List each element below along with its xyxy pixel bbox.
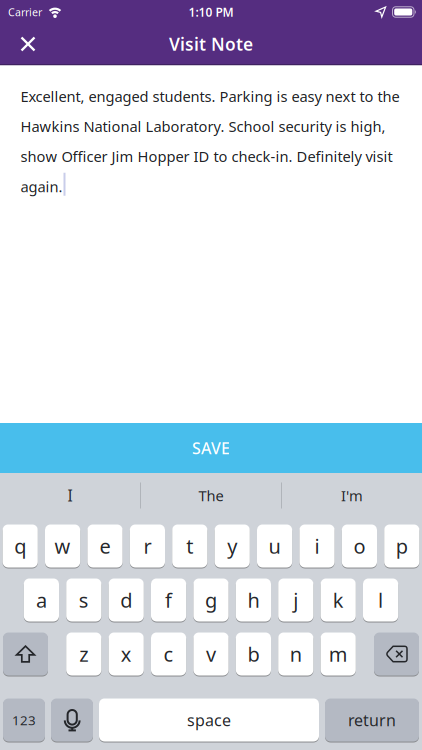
staticText: h: [247, 587, 259, 613]
staticText: r: [143, 533, 151, 559]
staticText: SAVE: [192, 437, 230, 459]
staticText: 123: [12, 711, 36, 729]
button[interactable]: k: [321, 578, 356, 622]
staticText: c: [164, 641, 174, 667]
button[interactable]: The: [141, 473, 281, 518]
button[interactable]: r: [130, 524, 165, 568]
staticText: v: [206, 641, 216, 667]
staticText: s: [79, 587, 89, 613]
staticText: t: [186, 533, 193, 559]
staticText: f: [165, 587, 172, 613]
button[interactable]: n: [278, 632, 313, 676]
button[interactable]: q: [3, 524, 38, 568]
button[interactable]: e: [87, 524, 123, 568]
staticText: d: [120, 587, 132, 613]
button[interactable]: i: [299, 524, 335, 568]
staticText: z: [79, 641, 88, 667]
staticText: e: [99, 533, 110, 559]
button[interactable]: y: [215, 524, 250, 568]
button[interactable]: j: [278, 578, 313, 622]
button[interactable]: s: [66, 578, 101, 622]
staticText: return: [348, 709, 396, 731]
staticText: u: [269, 533, 281, 559]
button[interactable]: x: [109, 632, 144, 676]
button[interactable]: return: [325, 698, 419, 742]
staticText: n: [290, 641, 302, 667]
staticText: o: [353, 533, 365, 559]
button[interactable]: I: [0, 473, 140, 518]
button[interactable]: space: [99, 698, 319, 742]
staticText: The: [198, 486, 223, 505]
button[interactable]: Dictate: [51, 698, 93, 742]
button[interactable]: o: [342, 524, 377, 568]
button[interactable]: m: [321, 632, 356, 676]
staticText: a: [36, 587, 47, 613]
staticText: space: [187, 709, 231, 731]
staticText: Hawkins National Laboratory. School secu…: [20, 117, 385, 136]
button[interactable]: w: [45, 524, 80, 568]
button[interactable]: 123: [3, 698, 45, 742]
staticText: m: [329, 641, 348, 667]
button[interactable]: c: [151, 632, 186, 676]
button[interactable]: Delete: [374, 632, 419, 676]
staticText: g: [205, 587, 217, 613]
staticText: Visit Note: [169, 32, 253, 55]
button[interactable]: d: [109, 578, 144, 622]
staticText: again.: [20, 177, 62, 196]
button[interactable]: p: [384, 524, 419, 568]
button[interactable]: I'm: [282, 473, 422, 518]
button[interactable]: g: [193, 578, 229, 622]
staticText: w: [55, 533, 71, 559]
staticText: Excellent, engaged students. Parking is …: [20, 86, 399, 106]
button[interactable]: Shift: [3, 632, 48, 676]
staticText: I: [67, 485, 72, 506]
staticText: b: [247, 641, 259, 667]
button[interactable]: l: [363, 578, 398, 622]
button[interactable]: z: [66, 632, 101, 676]
button[interactable]: SAVE: [0, 423, 422, 473]
staticText: i: [314, 533, 319, 559]
staticText: q: [14, 533, 26, 559]
staticText: 1:10 PM: [188, 4, 233, 20]
button[interactable]: Close: [6, 24, 50, 64]
staticText: x: [121, 641, 132, 667]
button[interactable]: u: [257, 524, 292, 568]
button[interactable]: h: [236, 578, 271, 622]
staticText: l: [378, 587, 383, 613]
staticText: p: [396, 533, 408, 559]
button[interactable]: b: [236, 632, 271, 676]
staticText: show Officer Jim Hopper ID to check-in. …: [20, 147, 392, 166]
button[interactable]: f: [151, 578, 186, 622]
staticText: j: [293, 587, 298, 613]
button[interactable]: t: [172, 524, 207, 568]
staticText: y: [227, 533, 237, 559]
staticText: I'm: [341, 486, 363, 505]
button[interactable]: v: [193, 632, 229, 676]
staticText: Carrier: [8, 5, 42, 19]
staticText: k: [333, 587, 344, 613]
button[interactable]: a: [24, 578, 59, 622]
